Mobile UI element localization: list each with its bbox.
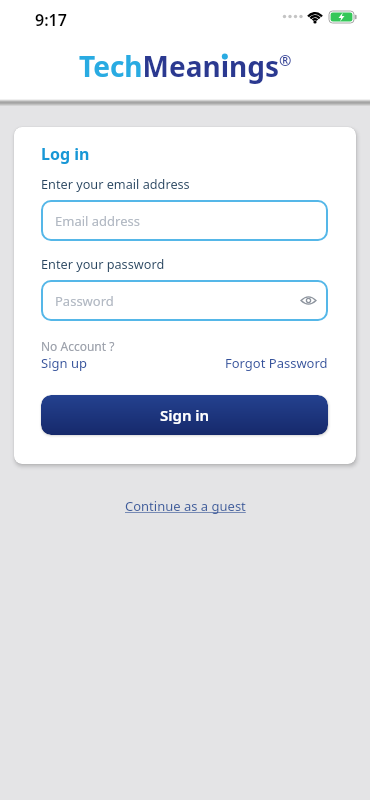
staticText: 9:17: [35, 9, 67, 31]
staticText: Sign in: [160, 405, 210, 425]
button[interactable]: Continue as a guest: [125, 497, 246, 515]
button[interactable]: Forgot Password: [225, 354, 328, 372]
staticText: No Account ?: [41, 338, 115, 354]
staticText: Log in: [41, 143, 90, 165]
button[interactable]: Sign in: [41, 395, 328, 435]
staticText: Enter your email address: [41, 175, 190, 192]
staticText: Email address: [55, 212, 140, 230]
button[interactable]: Email address: [41, 200, 328, 241]
staticText: TechMeanings®: [79, 47, 292, 85]
staticText: Password: [55, 292, 114, 310]
staticText: Enter your password: [41, 255, 165, 272]
button[interactable]: Sign up: [41, 354, 87, 372]
button[interactable]: Password: [41, 280, 328, 321]
